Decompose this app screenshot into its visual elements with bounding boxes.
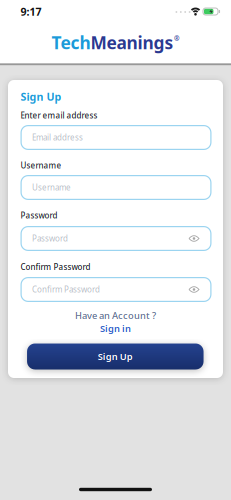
staticText: Meanings (90, 31, 173, 54)
staticText: Password (32, 233, 68, 244)
staticText: Enter email address (20, 110, 97, 121)
button[interactable]: Password (20, 226, 211, 251)
button[interactable]: Confirm Password (20, 277, 211, 302)
staticText: Sign Up (20, 89, 61, 104)
staticText: Tech (51, 31, 90, 54)
staticText: Confirm Password (32, 284, 100, 295)
staticText: Sign Up (98, 350, 133, 363)
staticText: Username (20, 160, 61, 171)
button[interactable]: Sign in (100, 322, 131, 335)
button[interactable]: Email address (20, 125, 211, 150)
staticText: Confirm Password (20, 262, 90, 272)
button[interactable]: Username (20, 175, 211, 200)
staticText: ® (174, 34, 180, 43)
staticText: Username (32, 182, 71, 193)
staticText: Email address (32, 132, 83, 143)
staticText: Sign in (100, 322, 131, 335)
staticText: Have an Account ? (75, 309, 156, 322)
button[interactable]: Sign Up (27, 343, 203, 369)
staticText: Password (20, 210, 57, 221)
staticText: 9:17 (20, 4, 41, 19)
